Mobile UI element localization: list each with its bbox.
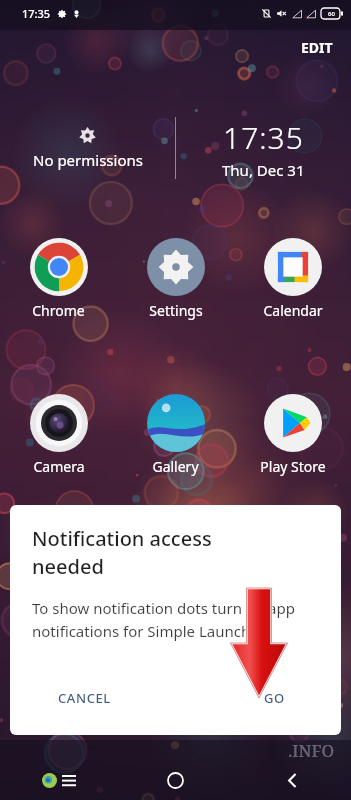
staticText: HARDRESET <box>40 685 311 739</box>
button[interactable]: Chrome <box>0 238 117 320</box>
staticText: Play Store <box>260 457 326 476</box>
staticText: GO <box>264 689 285 707</box>
button[interactable]: GO <box>175 675 341 721</box>
staticText: 60 <box>328 10 335 18</box>
button[interactable]: Camera <box>0 394 117 476</box>
staticText: 17:35 <box>223 117 304 158</box>
button[interactable]: Back <box>234 760 351 800</box>
staticText: 17:35 <box>22 6 51 21</box>
button[interactable]: Settings <box>117 238 234 320</box>
staticText: To show notification dots turn on app no… <box>32 598 319 641</box>
button[interactable]: Gallery <box>117 394 234 476</box>
staticText: EDIT <box>301 38 333 57</box>
button[interactable]: EDIT <box>297 36 337 59</box>
button[interactable]: Home <box>117 760 234 800</box>
button[interactable]: CANCEL <box>10 675 175 721</box>
staticText: CANCEL <box>58 689 111 707</box>
button[interactable]: No permissions <box>0 112 175 184</box>
staticText: .INFO <box>288 739 335 762</box>
staticText: Notification access needed <box>32 525 212 580</box>
staticText: Thu, Dec 31 <box>222 160 305 180</box>
staticText: Calendar <box>263 301 323 320</box>
staticText: No permissions <box>33 150 143 170</box>
staticText: Gallery <box>152 457 199 476</box>
button[interactable]: Calendar <box>234 238 351 320</box>
button[interactable]: Play Store <box>234 394 351 476</box>
staticText: Chrome <box>32 301 85 320</box>
staticText: Settings <box>149 301 203 320</box>
button[interactable]: Recent apps <box>0 760 117 800</box>
staticText: Camera <box>33 457 85 476</box>
button[interactable]: 17:35 <box>176 112 351 184</box>
